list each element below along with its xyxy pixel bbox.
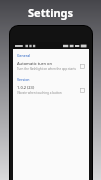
button[interactable]: Toggle setting bbox=[80, 88, 85, 93]
staticText: Settings bbox=[28, 5, 74, 20]
button[interactable]: 1.0.2 (23) bbox=[13, 83, 89, 97]
button[interactable]: Toggle setting bbox=[80, 64, 85, 69]
staticText: Vibrate when touching a button bbox=[17, 91, 62, 95]
staticText: Turn the flashlight on when the app star… bbox=[17, 67, 77, 71]
button[interactable]: Automatic turn on bbox=[13, 59, 89, 73]
staticText: Version bbox=[17, 77, 30, 82]
staticText: 1.0.2 (23) bbox=[17, 85, 35, 90]
staticText: General bbox=[17, 53, 31, 58]
staticText: Automatic turn on bbox=[17, 61, 53, 66]
